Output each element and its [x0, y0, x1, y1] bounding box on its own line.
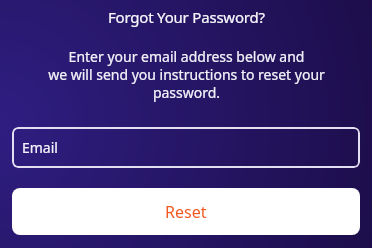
button[interactable]: Email [12, 127, 360, 168]
staticText: Email [22, 138, 58, 157]
staticText: Reset [165, 201, 207, 223]
staticText: Enter your email address below and we wi… [48, 47, 325, 102]
staticText: Forgot Your Password? [108, 7, 265, 27]
button[interactable]: Reset [12, 188, 360, 235]
